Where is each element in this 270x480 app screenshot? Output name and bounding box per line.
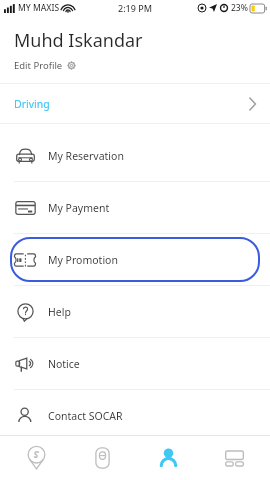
staticText: Driving [14,97,50,111]
staticText: Muhd Iskandar [14,28,143,53]
button[interactable]: Profile [138,436,198,480]
staticText: 2:19 PM [118,2,152,14]
button[interactable]: Map [6,436,66,480]
button[interactable]: Notice [0,338,270,389]
button[interactable]: Car control [72,436,132,480]
staticText: Edit Profile [14,59,63,72]
button[interactable]: Contact SOCAR [0,390,270,441]
staticText: My Payment [48,201,110,215]
staticText: My Reservation [48,149,124,163]
button[interactable]: Help [0,286,270,337]
button[interactable]: My Payment [0,182,270,233]
staticText: My Promotion [48,253,118,267]
button[interactable]: More [204,436,264,480]
staticText: Notice [48,357,80,371]
button[interactable]: Driving [0,84,270,123]
staticText: Help [48,305,71,319]
staticText: Contact SOCAR [48,409,123,423]
staticText: 23% [231,2,248,14]
staticText: MY MAXIS [18,2,60,14]
button[interactable]: My Promotion [10,237,260,282]
button[interactable]: Edit Profile [14,58,84,73]
button[interactable]: My Reservation [0,130,270,181]
